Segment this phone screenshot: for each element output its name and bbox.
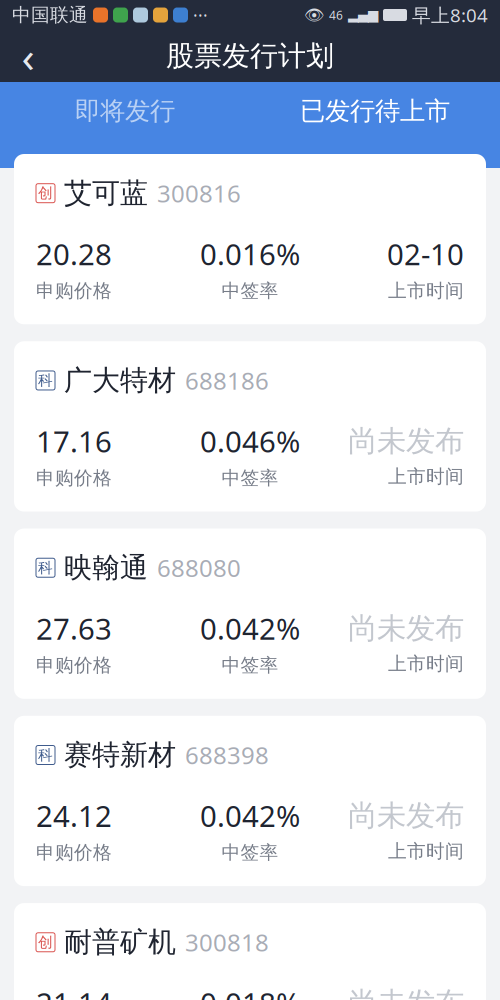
staticText: 46 xyxy=(329,7,343,23)
staticText: 02-10 xyxy=(387,234,464,273)
staticText: 科 xyxy=(38,746,53,764)
staticText: 300818 xyxy=(185,926,269,958)
staticText: 申购价格 xyxy=(36,467,112,489)
staticText: 赛特新材 xyxy=(64,738,176,772)
staticText: 688080 xyxy=(157,552,241,584)
staticText: 上市时间 xyxy=(388,652,464,675)
staticText: 创 xyxy=(38,184,53,202)
button[interactable]: 科 xyxy=(14,341,486,512)
button[interactable]: Back xyxy=(0,30,56,82)
staticText: 👁 xyxy=(304,6,324,24)
button[interactable]: 创 xyxy=(14,903,486,1000)
staticText: 尚未发布 xyxy=(348,798,464,834)
staticText: 科 xyxy=(38,371,53,389)
staticText: 股票发行计划 xyxy=(166,39,334,73)
staticText: 0.046% xyxy=(200,422,300,461)
staticText: 中国联通 xyxy=(12,3,88,26)
staticText: 上市时间 xyxy=(388,840,464,863)
staticText: 映翰通 xyxy=(64,550,148,585)
button[interactable]: 科 xyxy=(14,716,486,886)
staticText: 上市时间 xyxy=(388,465,464,488)
staticText: ▂▄▆ xyxy=(348,7,378,22)
staticText: ‹ xyxy=(21,28,34,84)
staticText: 申购价格 xyxy=(36,841,112,864)
staticText: 中签率 xyxy=(221,654,278,677)
staticText: 0.016% xyxy=(200,234,300,273)
staticText: 0.042% xyxy=(200,796,300,835)
staticText: 艾可蓝 xyxy=(64,176,148,210)
staticText: 广大特材 xyxy=(64,363,176,398)
staticText: 尚未发布 xyxy=(348,423,464,459)
staticText: 已发行待上市 xyxy=(300,95,450,126)
staticText: 尚未发布 xyxy=(348,610,464,646)
staticText: 中签率 xyxy=(221,841,278,864)
staticText: 申购价格 xyxy=(36,654,112,677)
staticText: 耐普矿机 xyxy=(64,925,176,959)
staticText: 27.63 xyxy=(36,609,112,648)
staticText: 688398 xyxy=(185,739,269,771)
staticText: 0.018% xyxy=(200,983,300,1000)
button[interactable]: 创 xyxy=(14,154,486,324)
staticText: 科 xyxy=(38,559,53,577)
staticText: 中签率 xyxy=(221,279,278,302)
staticText: 0.042% xyxy=(200,609,300,648)
staticText: 即将发行 xyxy=(75,95,175,126)
staticText: 创 xyxy=(38,933,53,951)
staticText: 24.12 xyxy=(36,796,112,835)
staticText: 17.16 xyxy=(36,422,112,461)
staticText: 中签率 xyxy=(221,467,278,489)
staticText: 上市时间 xyxy=(388,279,464,302)
staticText: 申购价格 xyxy=(36,279,112,302)
staticText: 20.28 xyxy=(36,234,112,273)
button[interactable]: 已发行待上市 xyxy=(250,82,500,140)
staticText: 688186 xyxy=(185,364,269,396)
staticText: 21.14 xyxy=(36,983,112,1000)
staticText: 尚未发布 xyxy=(348,985,464,1000)
staticText: ··· xyxy=(193,3,208,26)
staticText: 早上8:04 xyxy=(412,3,488,27)
button[interactable]: 即将发行 xyxy=(0,82,250,140)
button[interactable]: 科 xyxy=(14,528,486,699)
staticText: 300816 xyxy=(157,177,241,209)
